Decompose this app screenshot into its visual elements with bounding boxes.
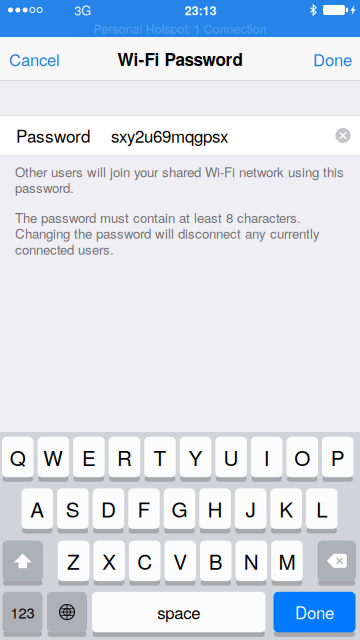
button[interactable]: 123 [2, 595, 42, 637]
staticText: The password must contain at least 8 cha… [15, 208, 320, 258]
button[interactable]: A [21, 492, 53, 533]
staticText: U [224, 442, 239, 472]
button[interactable]: Clear text [326, 115, 360, 155]
button[interactable]: P [322, 440, 354, 482]
button[interactable]: J [235, 492, 266, 533]
staticText: P [331, 442, 345, 472]
staticText: I [264, 442, 270, 472]
staticText: D [101, 494, 116, 523]
staticText: B [209, 546, 223, 576]
staticText: Password [16, 123, 90, 148]
staticText: Wi-Fi Password [117, 47, 242, 71]
staticText: S [66, 494, 80, 523]
staticText: 23:13 [185, 1, 217, 19]
staticText: Q [10, 442, 26, 472]
staticText: Cancel [9, 47, 60, 71]
staticText: W [43, 442, 63, 472]
button[interactable]: Q [2, 440, 34, 482]
button[interactable]: U [215, 440, 247, 482]
button[interactable]: W [38, 440, 69, 482]
staticText: sxy2u69mqgpsx [111, 123, 228, 148]
button[interactable]: C [129, 544, 160, 586]
staticText: K [279, 494, 293, 523]
staticText: G [171, 494, 187, 523]
staticText: Z [67, 546, 80, 576]
staticText: Done [313, 47, 352, 71]
staticText: Done [295, 600, 334, 624]
button[interactable]: Delete [317, 544, 356, 586]
staticText: N [244, 546, 259, 576]
button[interactable]: D [93, 492, 124, 533]
staticText: E [82, 442, 96, 472]
staticText: H [208, 494, 223, 523]
button[interactable]: Done [299, 37, 360, 81]
button[interactable]: Cancel [0, 37, 74, 81]
staticText: T [153, 442, 166, 472]
staticText: R [117, 442, 132, 472]
button[interactable]: K [270, 492, 302, 533]
staticText: M [278, 546, 295, 576]
button[interactable]: O [286, 440, 318, 482]
staticText: L [316, 494, 327, 523]
staticText: V [173, 546, 187, 576]
staticText: C [137, 546, 152, 576]
staticText: X [102, 546, 116, 576]
button[interactable]: space [92, 595, 265, 637]
button[interactable]: Shift [2, 544, 43, 586]
button[interactable]: Done [273, 595, 355, 637]
button[interactable]: I [251, 440, 282, 482]
staticText: Y [189, 442, 203, 472]
button[interactable]: Y [180, 440, 211, 482]
button[interactable]: N [236, 544, 267, 586]
button[interactable]: Next keyboard [47, 595, 87, 637]
button[interactable]: T [144, 440, 176, 482]
button[interactable]: M [271, 544, 303, 586]
staticText: 3G [74, 1, 91, 19]
staticText: space [157, 600, 200, 624]
button[interactable]: B [200, 544, 232, 586]
staticText: F [137, 494, 150, 523]
button[interactable]: S [57, 492, 89, 533]
staticText: O [294, 442, 310, 472]
staticText: Personal Hotspot: 1 Connection [93, 20, 266, 37]
button[interactable]: Z [58, 544, 89, 586]
button[interactable]: H [199, 492, 231, 533]
button[interactable]: E [73, 440, 105, 482]
staticText: A [30, 494, 44, 523]
button[interactable]: R [109, 440, 140, 482]
button[interactable]: G [164, 492, 195, 533]
button[interactable]: X [93, 544, 125, 586]
staticText: J [246, 494, 256, 523]
button[interactable]: V [164, 544, 196, 586]
staticText: 123 [10, 601, 34, 622]
button[interactable]: F [128, 492, 160, 533]
button[interactable]: L [306, 492, 337, 533]
staticText: Other users will join your shared Wi-Fi … [15, 162, 344, 197]
